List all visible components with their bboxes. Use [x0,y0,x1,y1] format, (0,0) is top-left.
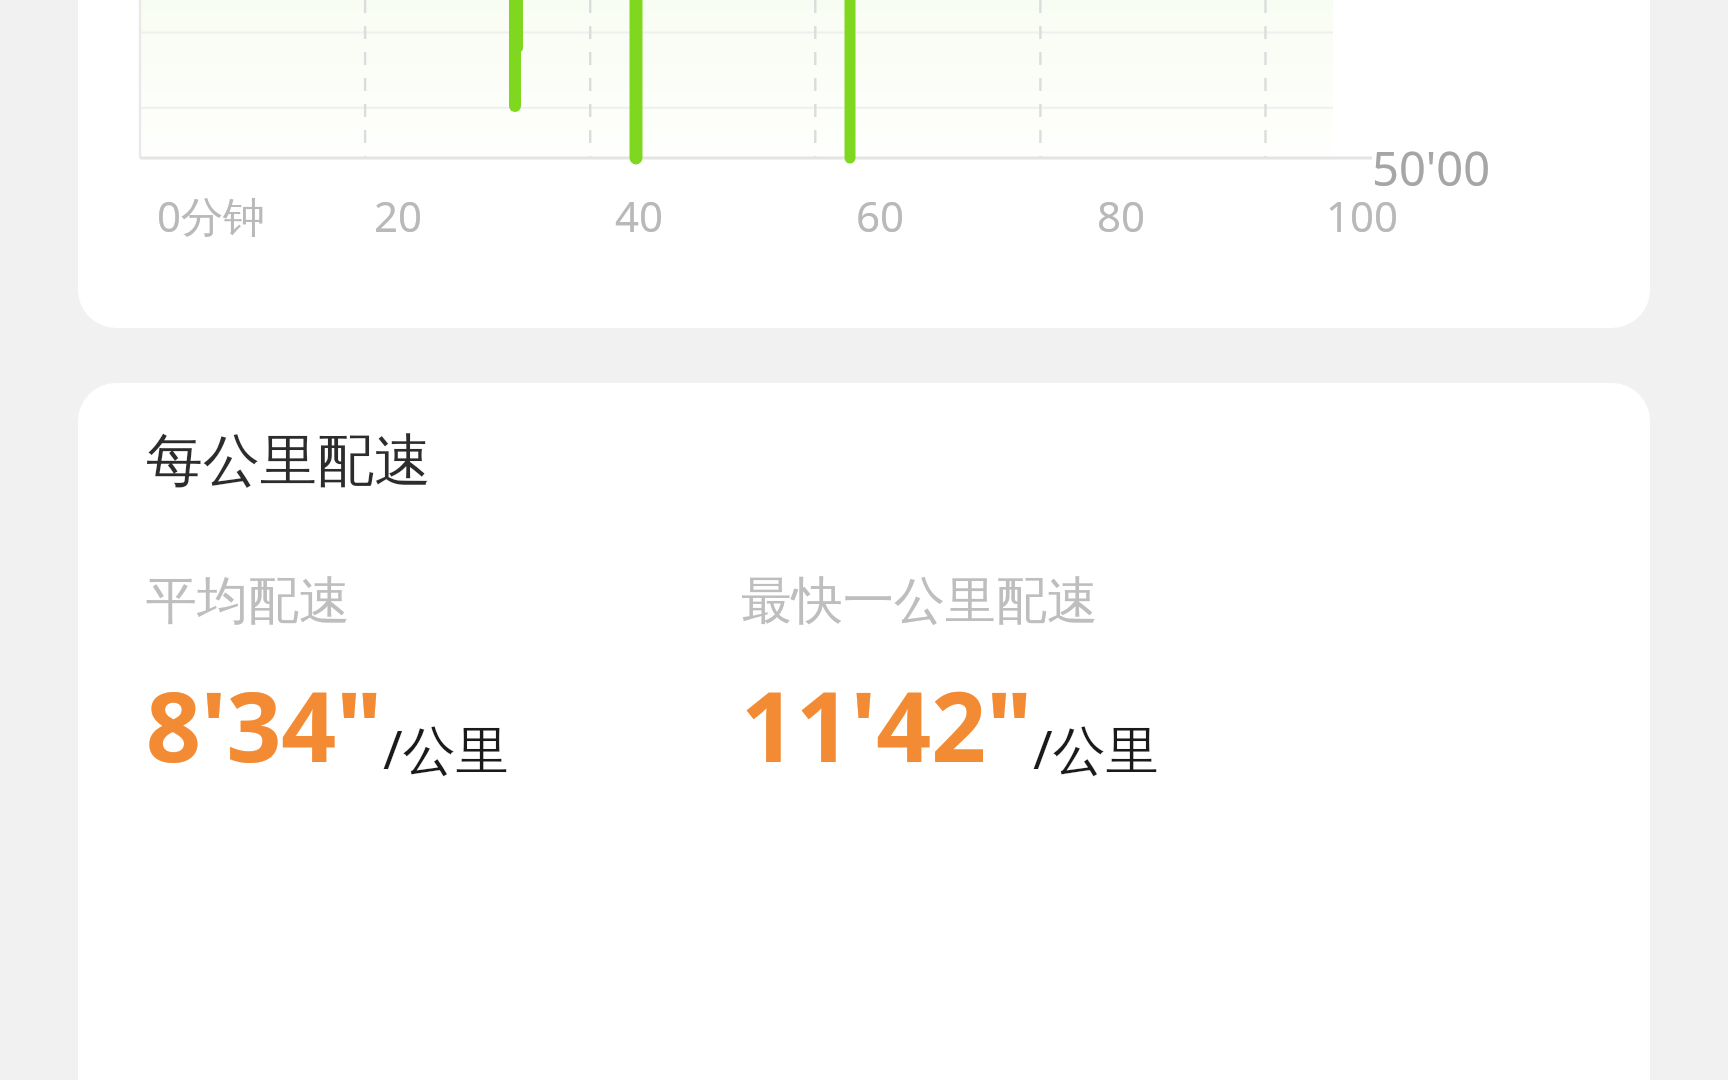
staticText: 40 [615,187,664,244]
button[interactable]: 0分钟 [78,0,1650,328]
staticText: 80 [1097,187,1146,244]
staticText: 最快一公里配速 [741,569,1098,633]
staticText: 20 [374,187,423,244]
staticText: 60 [856,187,905,244]
staticText: /公里 [1033,712,1159,784]
staticText: 每公里配速 [146,425,431,497]
staticText: /公里 [383,712,509,784]
staticText: 50'00 [1372,136,1491,200]
button[interactable]: 每公里配速 [78,383,1650,1080]
staticText: 0分钟 [157,187,266,244]
staticText: 平均配速 [146,569,350,633]
staticText: 100 [1326,187,1399,244]
staticText: 8'34" [146,659,383,790]
staticText: 11'42" [741,659,1033,790]
